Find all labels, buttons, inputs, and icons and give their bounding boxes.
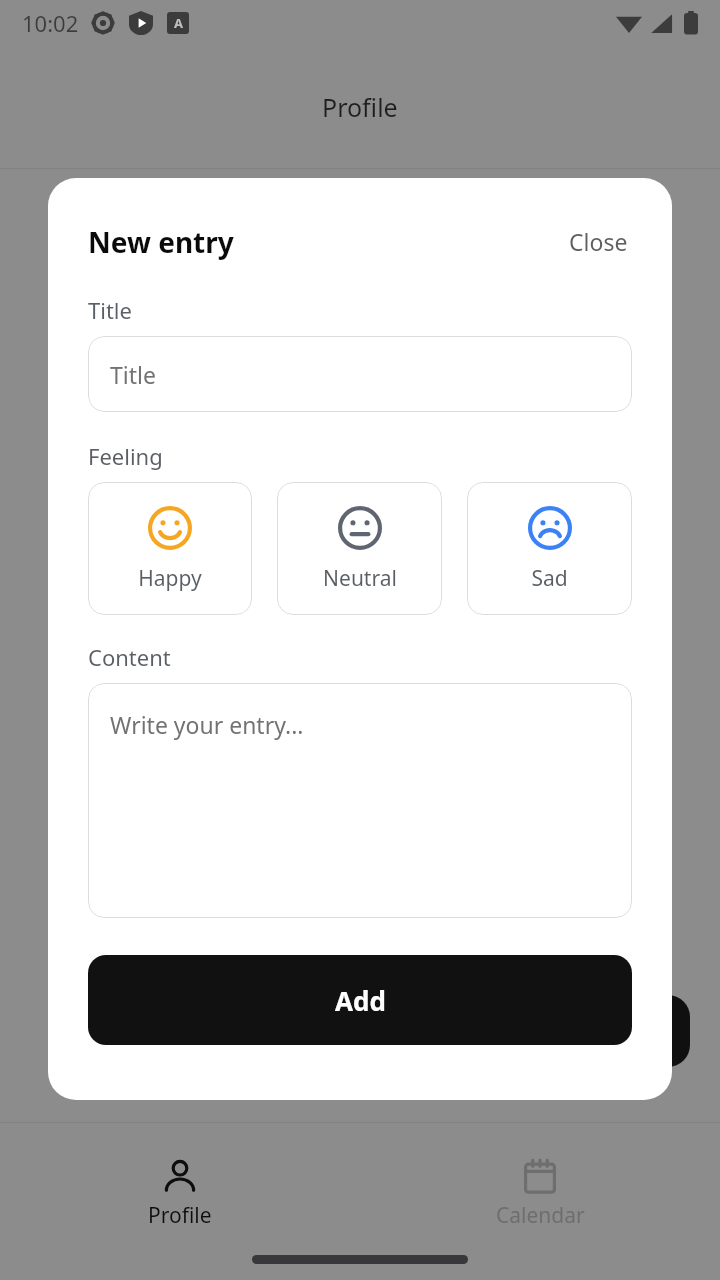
button[interactable]: Write your entry... bbox=[88, 683, 632, 918]
staticText: Title bbox=[88, 295, 132, 325]
staticText: Calendar bbox=[496, 1201, 585, 1230]
button[interactable]: Close bbox=[565, 222, 632, 261]
staticText: Happy bbox=[138, 564, 202, 593]
button[interactable]: Happy bbox=[88, 482, 252, 615]
staticText: New entry bbox=[88, 223, 234, 261]
staticText: Profile bbox=[148, 1201, 212, 1230]
staticText: Content bbox=[88, 642, 171, 672]
button[interactable]: Profile bbox=[0, 1151, 360, 1236]
button[interactable]: Add entry bbox=[618, 995, 690, 1067]
button[interactable]: Calendar bbox=[360, 1151, 720, 1236]
button[interactable]: Title bbox=[88, 336, 632, 412]
button[interactable]: Add bbox=[88, 955, 632, 1045]
staticText: Add bbox=[335, 983, 386, 1018]
button[interactable]: Neutral bbox=[277, 482, 442, 615]
staticText: Profile bbox=[322, 90, 398, 124]
staticText: Sad bbox=[531, 564, 568, 593]
staticText: A bbox=[174, 14, 183, 32]
button[interactable]: Sad bbox=[467, 482, 632, 615]
staticText: Write your entry... bbox=[110, 709, 304, 740]
staticText: Close bbox=[569, 226, 628, 257]
staticText: Feeling bbox=[88, 441, 163, 471]
staticText: Title bbox=[110, 359, 156, 390]
staticText: 10:02 bbox=[22, 8, 79, 38]
staticText: Neutral bbox=[323, 564, 397, 593]
